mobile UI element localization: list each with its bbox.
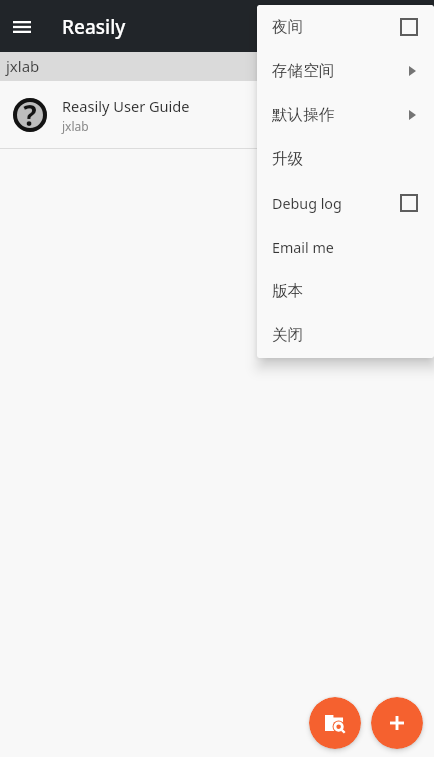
button[interactable]: Open navigation drawer <box>0 4 44 48</box>
button[interactable]: 夜间 <box>257 5 434 49</box>
staticText: Reasily User Guide <box>62 96 190 116</box>
button[interactable]: Browse files <box>309 697 361 749</box>
staticText: 关闭 <box>272 325 304 345</box>
button[interactable]: ? <box>0 81 434 148</box>
staticText: Debug log <box>272 194 342 213</box>
staticText: Reasily <box>62 14 126 40</box>
button[interactable]: 关闭 <box>257 313 434 357</box>
staticText: ? <box>23 96 37 130</box>
button[interactable]: 版本 <box>257 269 434 313</box>
staticText: jxlab <box>62 118 89 134</box>
staticText: Email me <box>272 238 334 257</box>
staticText: jxlab <box>6 56 40 76</box>
staticText: 存储空间 <box>272 61 335 81</box>
button[interactable]: Debug log <box>257 181 434 225</box>
staticText: 默认操作 <box>272 105 335 125</box>
staticText: 版本 <box>272 281 304 301</box>
button[interactable]: Email me <box>257 225 434 269</box>
button[interactable]: Add <box>371 697 423 749</box>
button[interactable]: 升级 <box>257 137 434 181</box>
staticText: 升级 <box>272 149 304 169</box>
staticText: 夜间 <box>272 17 304 37</box>
button[interactable]: 存储空间 <box>257 49 434 93</box>
button[interactable]: 默认操作 <box>257 93 434 137</box>
